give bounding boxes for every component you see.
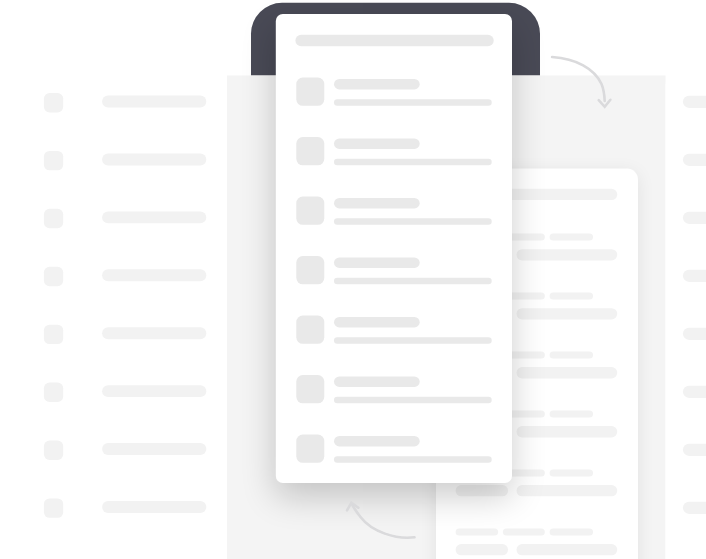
button[interactable]: Loading placeholder illustration (0, 0, 706, 559)
